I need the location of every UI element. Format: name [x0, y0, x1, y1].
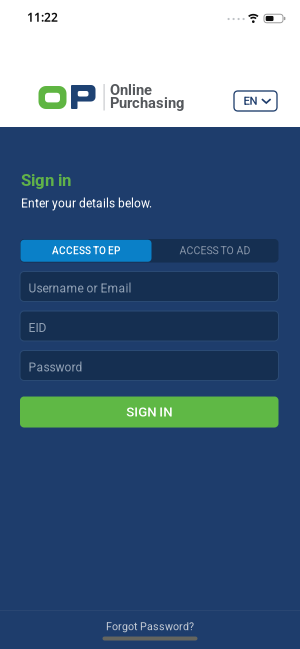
staticText: Sign in [21, 170, 71, 190]
button[interactable]: Password [20, 350, 278, 380]
staticText: Online [110, 81, 152, 99]
staticText: Purchasing [110, 94, 184, 112]
staticText: Forgot Password? [106, 620, 194, 633]
staticText: 11:22 [27, 9, 58, 25]
staticText: Password [28, 360, 82, 374]
staticText: ACCESS TO EP [52, 245, 120, 257]
staticText: EN [243, 94, 257, 108]
staticText: SIGN IN [126, 404, 172, 420]
staticText: Username or Email [28, 281, 131, 295]
button[interactable]: ACCESS TO EP [20, 240, 151, 262]
staticText: ACCESS TO AD [179, 245, 250, 257]
button[interactable]: Forgot Password? [106, 620, 194, 633]
button[interactable]: Username or Email [20, 271, 278, 301]
button[interactable]: EID [20, 311, 278, 341]
button[interactable]: EN [234, 91, 277, 111]
button[interactable]: SIGN IN [20, 396, 278, 427]
staticText: Enter your details below. [21, 196, 152, 210]
staticText: EID [28, 321, 46, 335]
button[interactable]: ACCESS TO AD [151, 239, 278, 262]
